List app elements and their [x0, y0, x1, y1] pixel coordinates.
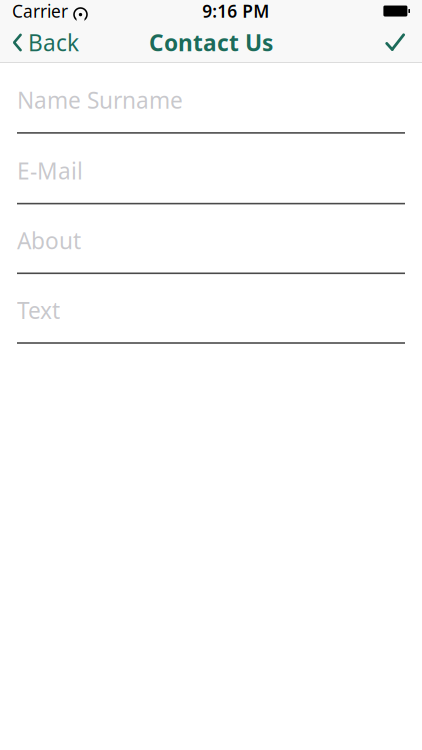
staticText: Carrier	[12, 0, 68, 22]
staticText: Name Surname	[17, 85, 183, 115]
button[interactable]: Text	[17, 274, 405, 344]
button[interactable]: Name Surname	[17, 63, 405, 134]
button[interactable]: Back	[0, 22, 91, 63]
staticText: Back	[28, 27, 79, 57]
staticText: Text	[17, 295, 60, 325]
staticText: About	[17, 225, 81, 255]
button[interactable]: Done	[370, 22, 422, 63]
staticText: Contact Us	[149, 27, 273, 57]
button[interactable]: E-Mail	[17, 134, 405, 204]
button[interactable]: About	[17, 204, 405, 274]
staticText: 9:16 PM	[202, 0, 269, 22]
staticText: E-Mail	[17, 156, 83, 186]
